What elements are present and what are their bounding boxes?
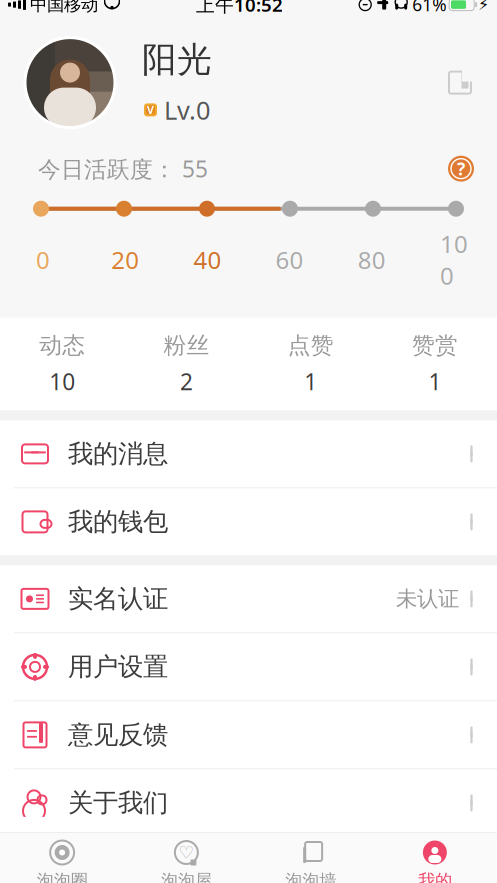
staticText: 80 xyxy=(358,244,386,275)
button[interactable]: 动态 xyxy=(0,317,124,410)
staticText: 我的 xyxy=(418,870,452,883)
staticText: 关于我们 xyxy=(68,787,168,818)
button[interactable]: 关于我们 xyxy=(0,769,497,836)
staticText: 赞赏 xyxy=(412,331,458,359)
button[interactable]: 编辑资料 xyxy=(445,68,497,98)
staticText: 61% xyxy=(412,0,446,16)
button[interactable]: 我的消息 xyxy=(0,420,497,488)
button[interactable]: 赞赏 xyxy=(373,317,497,410)
staticText: Lv.0 xyxy=(164,93,210,127)
staticText: 泡泡墙 xyxy=(285,870,336,883)
staticText: 实名认证 xyxy=(68,583,168,614)
staticText: 点赞 xyxy=(288,331,334,359)
button[interactable]: 意见反馈 xyxy=(0,701,497,769)
button[interactable]: ♡ xyxy=(124,833,248,883)
staticText: 动态 xyxy=(39,331,85,359)
staticText: 泡泡圈 xyxy=(37,870,88,883)
staticText: 100 xyxy=(440,228,468,291)
staticText: V xyxy=(147,103,154,117)
staticText: 1 xyxy=(304,366,317,396)
button[interactable]: 粉丝 xyxy=(124,317,248,410)
button[interactable]: 活跃度说明 xyxy=(447,155,497,183)
staticText: 泡泡屋 xyxy=(161,870,212,883)
staticText: 我的消息 xyxy=(68,438,168,469)
staticText: 60 xyxy=(276,244,304,275)
staticText: 意见反馈 xyxy=(68,719,168,750)
staticText: 今日活跃度： 55 xyxy=(38,154,208,184)
button[interactable]: 点赞 xyxy=(248,317,373,410)
button[interactable]: 我的钱包 xyxy=(0,488,497,555)
staticText: 20 xyxy=(111,244,139,275)
staticText: 10 xyxy=(49,366,75,396)
staticText: 未认证 xyxy=(396,586,459,612)
staticText: 2 xyxy=(180,366,193,396)
staticText: 用户设置 xyxy=(68,651,168,682)
staticText: 我的钱包 xyxy=(68,506,168,537)
button[interactable]: 实名认证 xyxy=(0,565,497,633)
staticText: 中国移动 xyxy=(30,0,98,15)
staticText: 0 xyxy=(36,244,50,275)
staticText: 40 xyxy=(193,244,221,275)
button[interactable]: 用户设置 xyxy=(0,633,497,701)
staticText: 阳光 xyxy=(142,38,212,81)
button[interactable]: 泡泡墙 xyxy=(248,833,373,883)
button[interactable]: 我的 xyxy=(373,833,497,883)
button[interactable]: 泡泡圈 xyxy=(0,833,124,883)
staticText: 粉丝 xyxy=(163,331,209,359)
staticText: 1 xyxy=(428,366,441,396)
staticText: ♡ xyxy=(178,843,194,862)
staticText: 上午10:52 xyxy=(196,0,283,17)
staticText: ? xyxy=(457,157,465,180)
staticText: ⚡︎ xyxy=(478,0,489,14)
